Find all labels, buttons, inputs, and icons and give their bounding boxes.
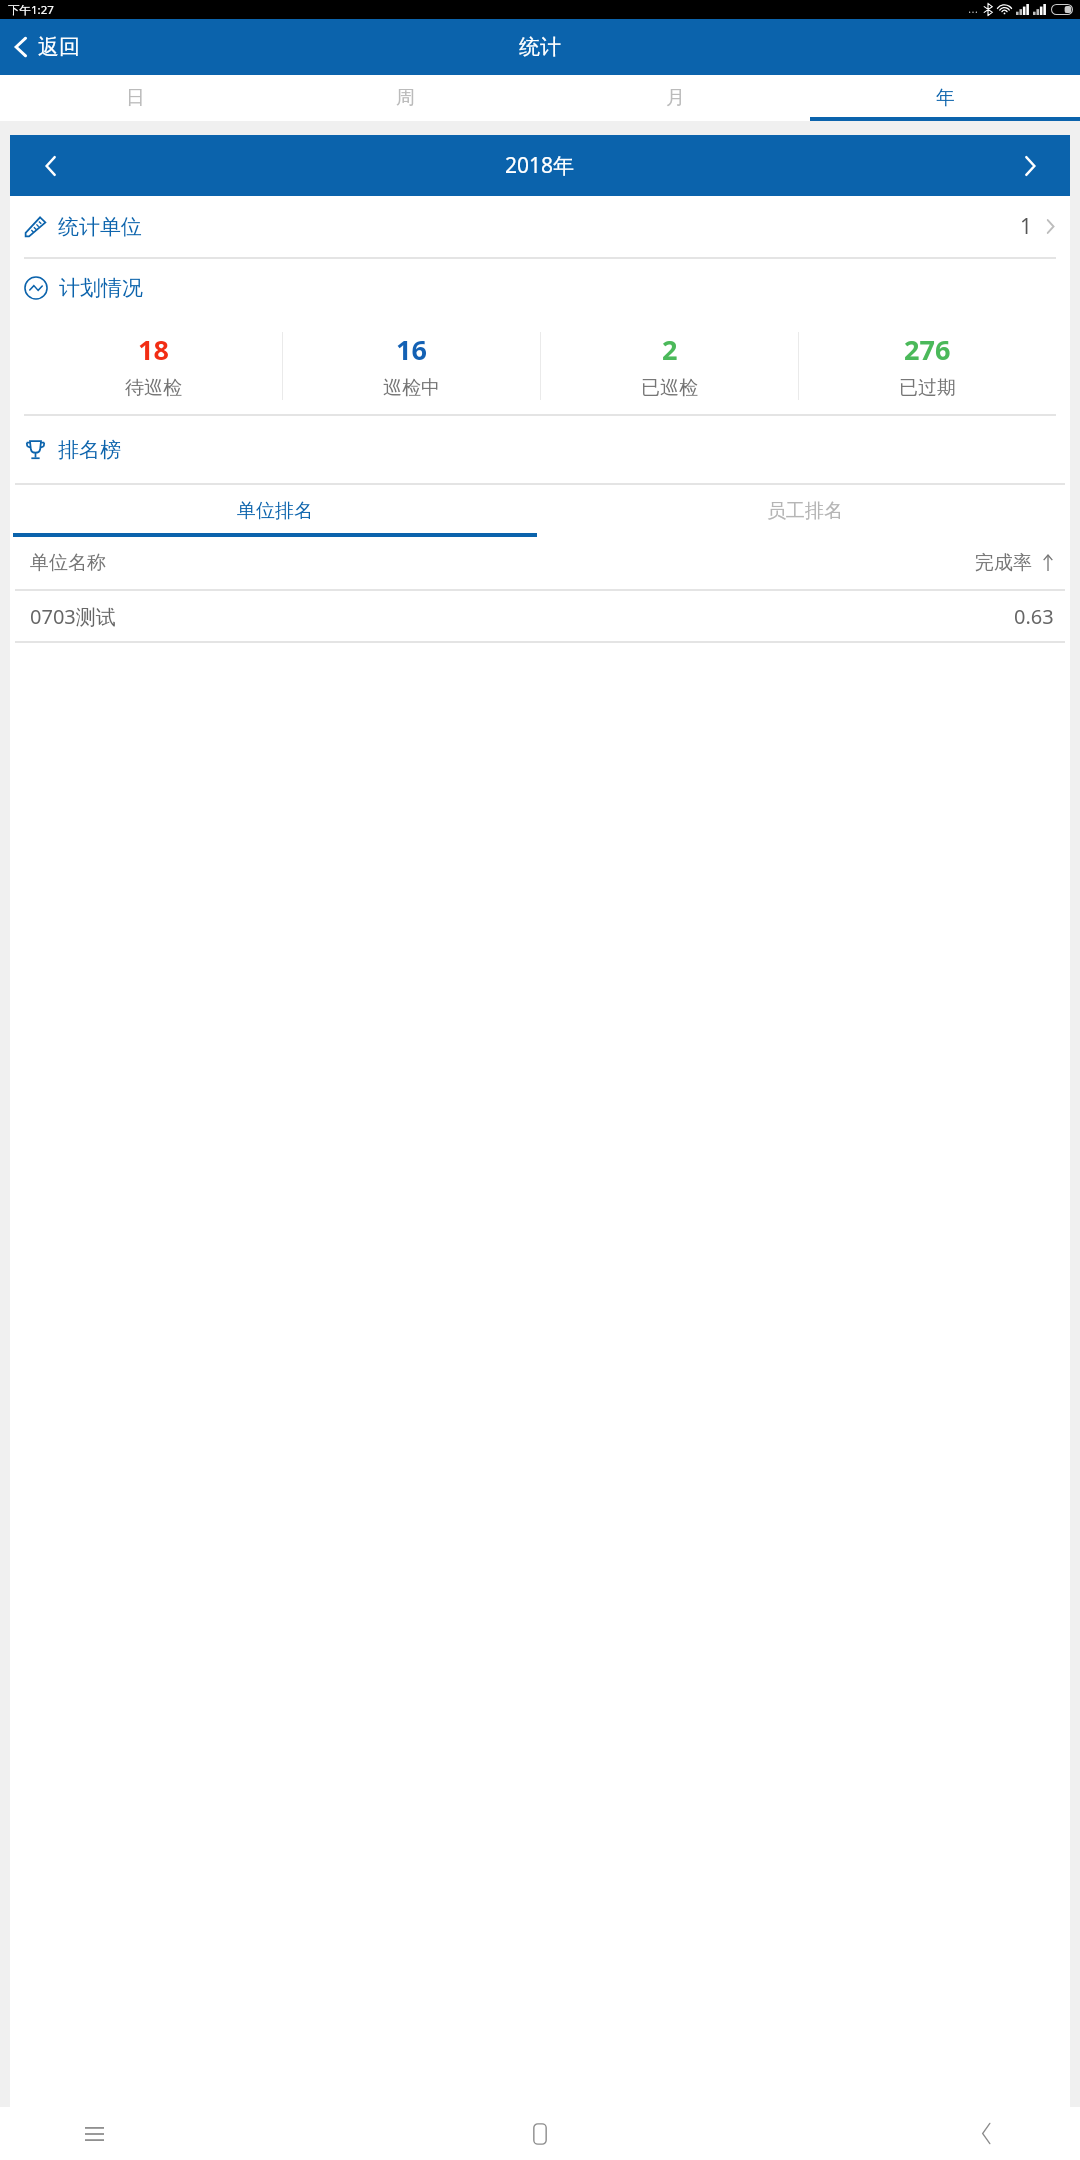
staticText: 16	[396, 331, 427, 368]
staticText: 已过期	[899, 376, 956, 400]
staticText: 周	[396, 86, 415, 110]
staticText: 18	[138, 331, 169, 368]
staticText: 待巡检	[125, 376, 182, 400]
staticText: 2	[662, 331, 678, 368]
button[interactable]: 0703测试	[10, 591, 1070, 641]
button[interactable]: 月	[540, 75, 810, 121]
button[interactable]: Previous year	[10, 135, 90, 196]
button[interactable]: 返回	[0, 26, 94, 68]
button[interactable]: Next year	[990, 135, 1070, 196]
staticText: 统计	[519, 34, 561, 60]
staticText: 已巡检	[641, 376, 698, 400]
button[interactable]: 日	[0, 75, 270, 121]
staticText: 员工排名	[767, 499, 843, 523]
staticText: 年	[936, 86, 955, 110]
button[interactable]: 276	[799, 317, 1056, 414]
staticText: 0703测试	[30, 603, 116, 630]
button[interactable]: 计划情况	[10, 259, 1070, 317]
button[interactable]: 统计单位	[10, 196, 1070, 257]
button[interactable]: Recent apps	[66, 2107, 122, 2160]
button[interactable]: 年	[810, 75, 1080, 121]
staticText: 下午1:27	[8, 2, 54, 18]
staticText: 统计单位	[58, 214, 142, 240]
staticText: 1	[1020, 212, 1033, 241]
staticText: 巡检中	[383, 376, 440, 400]
button[interactable]: 18	[24, 317, 282, 414]
button[interactable]: 2	[541, 317, 798, 414]
button[interactable]: 排名榜	[10, 416, 1070, 483]
staticText: 计划情况	[59, 275, 143, 301]
button[interactable]: 16	[283, 317, 540, 414]
staticText: 日	[126, 86, 145, 110]
staticText: 276	[904, 331, 951, 368]
button[interactable]: 员工排名	[540, 485, 1070, 537]
staticText: 月	[666, 86, 685, 110]
button[interactable]: Back	[958, 2107, 1014, 2160]
staticText: 单位名称	[30, 551, 106, 575]
button[interactable]: 单位排名	[10, 485, 540, 537]
staticText: 完成率	[975, 551, 1032, 575]
button[interactable]: 周	[270, 75, 540, 121]
staticText: 2018年	[505, 151, 575, 180]
staticText: 排名榜	[58, 437, 121, 463]
staticText: 返回	[38, 34, 80, 60]
button[interactable]: 完成率	[975, 551, 1054, 575]
button[interactable]: Home	[512, 2107, 568, 2160]
staticText: 单位排名	[237, 499, 313, 523]
staticText: 0.63	[1014, 603, 1054, 630]
